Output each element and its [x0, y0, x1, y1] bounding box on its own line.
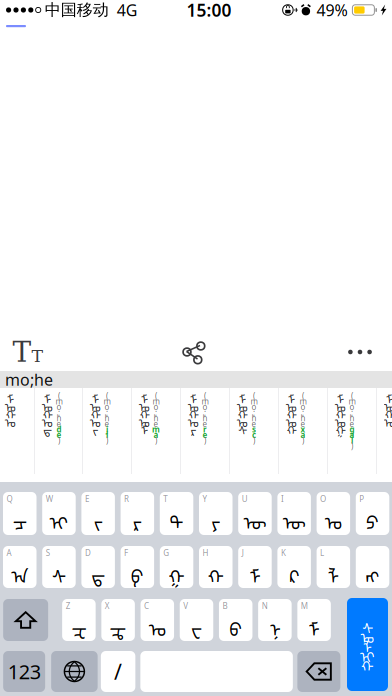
button[interactable]: More	[336, 334, 384, 370]
staticText: m	[103, 396, 110, 407]
button[interactable]: T	[160, 492, 193, 535]
staticText: c	[252, 430, 256, 440]
staticText: h	[153, 413, 158, 423]
button[interactable]: B	[219, 599, 252, 641]
button[interactable]: Return	[347, 598, 388, 691]
button[interactable]: R	[121, 492, 154, 535]
button[interactable]: E	[81, 492, 115, 535]
button[interactable]: ᠮ	[35, 388, 82, 482]
button[interactable]	[356, 546, 389, 588]
button[interactable]: Text format	[4, 334, 52, 370]
button[interactable]: H	[199, 546, 232, 588]
button[interactable]: C	[141, 599, 174, 641]
button[interactable]: X	[101, 599, 135, 641]
staticText: (	[302, 390, 304, 401]
staticText: ᠣ	[237, 394, 248, 415]
staticText: V	[183, 600, 188, 611]
staticText: o	[202, 402, 207, 412]
button[interactable]: ᠮ	[181, 388, 229, 482]
staticText: e	[349, 418, 354, 429]
staticText: ᠭ	[335, 418, 345, 439]
button[interactable]: ᠮ	[377, 388, 392, 482]
staticText: ᠣ	[149, 609, 166, 642]
button[interactable]: U	[238, 492, 272, 535]
staticText: )	[155, 435, 157, 446]
button[interactable]: Shift	[3, 599, 48, 641]
staticText: ᠰ	[238, 418, 247, 439]
staticText: ᠵ	[94, 503, 103, 536]
staticText: e	[202, 430, 207, 440]
button[interactable]: ᠮ	[132, 388, 180, 482]
staticText: (	[106, 390, 108, 401]
button[interactable]: Next keyboard	[51, 651, 98, 692]
staticText: P	[359, 493, 364, 504]
button[interactable]: O	[317, 492, 350, 535]
staticText: 中国移动	[45, 0, 109, 20]
button[interactable]: Share	[170, 334, 218, 370]
button[interactable]: A	[3, 546, 36, 588]
button[interactable]: S	[42, 546, 76, 588]
staticText: a	[300, 430, 305, 440]
button[interactable]: J	[238, 546, 272, 588]
staticText: e	[104, 418, 109, 429]
button[interactable]: Delete	[297, 651, 340, 692]
button[interactable]: L	[317, 546, 350, 588]
button[interactable]: F	[121, 546, 154, 588]
button[interactable]: ᠮ	[83, 388, 131, 482]
staticText: m	[152, 424, 160, 435]
button[interactable]: /	[101, 651, 135, 692]
button[interactable]: ᠮ	[0, 388, 34, 482]
staticText: ᠮ	[386, 386, 392, 407]
staticText: ᠣ	[384, 394, 392, 415]
button[interactable]: I	[277, 492, 311, 535]
staticText: ᠣ	[139, 410, 150, 431]
staticText: ᠬ	[286, 418, 296, 439]
staticText: O	[320, 493, 326, 504]
button[interactable]: N	[258, 599, 292, 641]
staticText: a	[153, 430, 158, 440]
button[interactable]: ᠮ	[328, 388, 376, 482]
button[interactable]: Z	[62, 599, 96, 641]
staticText: h	[104, 413, 109, 423]
staticText: ;	[351, 407, 353, 418]
button[interactable]: G	[160, 546, 193, 588]
button[interactable]: 123	[3, 651, 45, 692]
button[interactable]: P	[356, 492, 389, 535]
button[interactable]: Q	[3, 492, 36, 535]
staticText: (	[253, 390, 255, 401]
staticText: r	[203, 424, 207, 435]
button[interactable]: V	[180, 599, 213, 641]
staticText: ᠵ	[92, 418, 98, 439]
staticText: m	[250, 396, 257, 407]
staticText: ᠮ	[44, 386, 51, 407]
button[interactable]: Space	[140, 651, 293, 692]
button[interactable]: ᠮ	[279, 388, 327, 482]
staticText: o	[56, 402, 61, 412]
button[interactable]: K	[277, 546, 311, 588]
staticText: ᠣ	[139, 394, 150, 415]
staticText: x	[300, 424, 305, 435]
staticText: ᠢ	[49, 503, 68, 536]
staticText: ᠷ	[190, 418, 196, 439]
staticText: ᠣ	[188, 394, 199, 415]
staticText: E	[85, 493, 89, 504]
staticText: m	[152, 396, 159, 407]
staticText: ᠬ	[5, 402, 15, 423]
staticText: s	[252, 424, 256, 435]
staticText: S	[46, 547, 50, 558]
button[interactable]: D	[81, 546, 115, 588]
staticText: ᠫ	[366, 503, 379, 536]
staticText: U	[242, 493, 248, 504]
staticText: ᠬ	[286, 402, 296, 423]
button[interactable]: W	[42, 492, 76, 535]
button[interactable]: Y	[199, 492, 232, 535]
staticText: ᠢ	[360, 641, 375, 667]
staticText: ᠣ	[335, 394, 346, 415]
staticText: ᠣ	[286, 410, 297, 431]
staticText: ᠬ	[208, 556, 224, 589]
staticText: )	[351, 441, 353, 451]
staticText: ᠬ	[90, 402, 100, 423]
staticText: ᠹ	[131, 556, 144, 589]
button[interactable]: M	[297, 599, 331, 641]
button[interactable]: ᠮ	[230, 388, 278, 482]
